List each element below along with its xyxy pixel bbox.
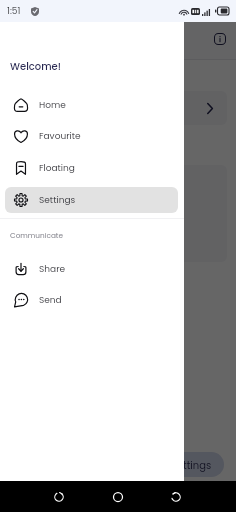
- staticText: Communicate: [10, 230, 64, 240]
- button[interactable]: Floating: [5, 155, 178, 181]
- staticText: Welcome!: [10, 59, 61, 73]
- staticText: 1:51: [7, 5, 21, 18]
- button[interactable]: [8, 91, 227, 125]
- button[interactable]: Share: [5, 256, 178, 282]
- staticText: Settings: [171, 458, 212, 472]
- staticText: Send: [39, 294, 62, 307]
- button[interactable]: Back: [162, 483, 190, 511]
- staticText: Settings: [39, 194, 76, 207]
- button[interactable]: Settings: [5, 187, 178, 213]
- staticText: Share: [39, 263, 66, 276]
- button[interactable]: [8, 165, 227, 262]
- button[interactable]: Recent apps: [45, 483, 73, 511]
- staticText: Floating: [39, 162, 75, 175]
- button[interactable]: Favourite: [5, 123, 178, 149]
- button[interactable]: Settings: [159, 452, 224, 477]
- staticText: Favourite: [39, 130, 81, 143]
- staticText: Home: [39, 99, 66, 112]
- button[interactable]: Send: [5, 287, 178, 313]
- button[interactable]: Home: [5, 92, 178, 118]
- button[interactable]: Home: [104, 483, 132, 511]
- button[interactable]: Info: [207, 26, 232, 51]
